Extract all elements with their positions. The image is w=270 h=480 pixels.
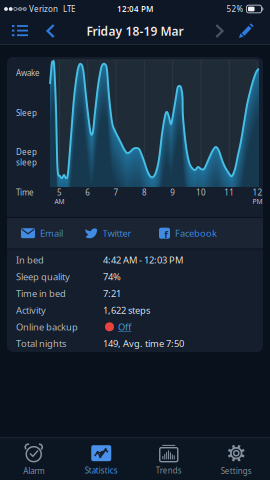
- button[interactable]: Edit note: [238, 23, 254, 39]
- staticText: 11: [224, 187, 234, 198]
- staticText: In bed: [16, 254, 44, 266]
- staticText: Deep: [16, 147, 37, 157]
- staticText: 9: [170, 187, 175, 198]
- staticText: Twitter: [102, 227, 131, 239]
- staticText: Time: [16, 187, 34, 198]
- staticText: PM: [253, 197, 263, 206]
- staticText: Facebook: [175, 227, 217, 239]
- staticText: 74%: [103, 270, 121, 283]
- staticText: LTE: [63, 4, 75, 14]
- staticText: 149, Avg. time 7:50: [103, 337, 184, 350]
- button[interactable]: Alarm: [23, 444, 44, 476]
- button[interactable]: Twitter: [84, 227, 131, 239]
- button[interactable]: f: [159, 227, 217, 239]
- staticText: 7:21: [103, 287, 121, 300]
- button[interactable]: Off: [105, 321, 131, 333]
- staticText: 5: [57, 187, 62, 198]
- staticText: Statistics: [85, 465, 118, 476]
- staticText: Off: [118, 321, 131, 333]
- staticText: Activity: [16, 304, 46, 316]
- staticText: 10: [196, 187, 206, 198]
- button[interactable]: Next night: [213, 24, 224, 38]
- staticText: 8: [142, 187, 147, 198]
- staticText: Sleep: [16, 108, 37, 118]
- button[interactable]: Previous night: [45, 24, 56, 38]
- staticText: 7: [114, 187, 119, 198]
- staticText: Online backup: [16, 321, 78, 333]
- staticText: 52%: [226, 4, 243, 14]
- staticText: Awake: [16, 68, 40, 78]
- staticText: Total nights: [16, 337, 66, 350]
- staticText: Trends: [156, 465, 182, 476]
- staticText: 12: [253, 187, 263, 198]
- button[interactable]: Trends: [156, 444, 182, 476]
- staticText: 12:04 PM: [117, 4, 153, 14]
- staticText: Settings: [221, 466, 252, 476]
- staticText: Sleep quality: [16, 270, 70, 283]
- button[interactable]: Settings: [221, 444, 252, 476]
- staticText: Email: [40, 227, 63, 239]
- staticText: 1,622 steps: [103, 304, 150, 316]
- staticText: 6: [85, 187, 90, 198]
- button[interactable]: Statistics: [85, 444, 118, 476]
- staticText: Friday 18-19 Mar: [86, 23, 183, 39]
- button[interactable]: Email: [21, 227, 63, 239]
- staticText: f: [164, 228, 168, 241]
- staticText: 4:42 AM - 12:03 PM: [103, 254, 183, 266]
- button[interactable]: Journal: [12, 23, 29, 39]
- staticText: AM: [54, 197, 64, 206]
- staticText: Verizon: [29, 4, 58, 14]
- staticText: Alarm: [23, 466, 44, 476]
- staticText: Time in bed: [16, 287, 66, 300]
- staticText: sleep: [16, 157, 37, 168]
